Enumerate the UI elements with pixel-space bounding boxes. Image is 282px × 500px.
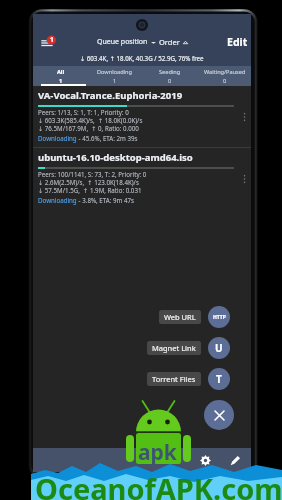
button[interactable]: Waiting/Paused: [199, 66, 251, 86]
button[interactable]: Magnet Link: [147, 341, 201, 355]
staticText: 0: [168, 77, 172, 85]
staticText: Downloading: [97, 68, 132, 76]
staticText: Queue position: [97, 37, 148, 47]
staticText: 1: [113, 77, 117, 85]
button[interactable]: All: [33, 66, 88, 86]
staticText: ↓ 603.3K(585.4K)/s, ↑ 18.0K(0.0K)/s: [38, 116, 143, 124]
staticText: Downloading: [38, 134, 77, 142]
staticText: Order: [159, 37, 180, 47]
button[interactable]: Torrent Files: [208, 368, 230, 390]
staticText: T: [216, 372, 222, 386]
staticText: 0: [223, 77, 227, 85]
button[interactable]: Web URL: [208, 306, 230, 328]
staticText: apk: [138, 438, 177, 467]
button[interactable]: Edit: [226, 451, 244, 469]
staticText: Magnet Link: [152, 343, 196, 353]
staticText: Seeding: [159, 68, 181, 76]
staticText: HTTP: [213, 314, 226, 321]
staticText: Edit: [227, 35, 248, 48]
button[interactable]: More options: [238, 105, 251, 129]
staticText: 1: [59, 77, 63, 85]
staticText: Torrent Files: [152, 374, 196, 384]
staticText: Peers: 1/13, S: 1, T: 1, Priority: 0: [38, 108, 129, 116]
button[interactable]: More options: [238, 167, 251, 191]
button[interactable]: Queue position: [97, 35, 156, 49]
staticText: Peers: 100/1141, S: 73, T: 2, Priority: …: [38, 170, 147, 178]
staticText: - 45.6%, ETA: 2m 39s: [77, 134, 138, 142]
button[interactable]: Order: [159, 35, 188, 49]
staticText: OceanofAPK.com: [35, 469, 282, 500]
button[interactable]: Downloading: [88, 66, 141, 86]
button[interactable]: Menu: [38, 33, 55, 50]
staticText: VA-Vocal.Trance.Euphoria-2019: [38, 89, 183, 102]
staticText: ↓ 76.5M/167.9M, ↑ 0, Ratio: 0.000: [38, 124, 139, 132]
staticText: Downloading: [38, 196, 77, 204]
button[interactable]: Web URL: [159, 310, 201, 324]
button[interactable]: Magnet Link: [208, 337, 230, 359]
staticText: 1: [50, 35, 54, 44]
staticText: ↓ 2.6M(2.5M)/s, ↑ 123.0K(18.4K)/s: [38, 178, 139, 186]
button[interactable]: Seeding: [141, 66, 199, 86]
staticText: All: [57, 68, 65, 76]
staticText: U: [215, 341, 223, 355]
button[interactable]: Torrent Files: [147, 372, 201, 386]
button[interactable]: Settings: [196, 451, 214, 469]
button[interactable]: Edit: [221, 33, 250, 50]
staticText: ubuntu-16.10-desktop-amd64.iso: [38, 151, 193, 164]
staticText: Waiting/Paused: [204, 68, 246, 76]
staticText: - 3.8%, ETA: 9m 47s: [77, 196, 134, 204]
button[interactable]: Close add menu: [204, 400, 234, 430]
staticText: ↓ 57.5M/1.5G, ↑ 1.9M, Ratio: 0.031: [38, 186, 142, 194]
staticText: Web URL: [164, 312, 196, 322]
staticText: ↓ 603.4K, ↑ 18.0K, 40.3G / 52.9G, 76% fr…: [80, 54, 204, 62]
